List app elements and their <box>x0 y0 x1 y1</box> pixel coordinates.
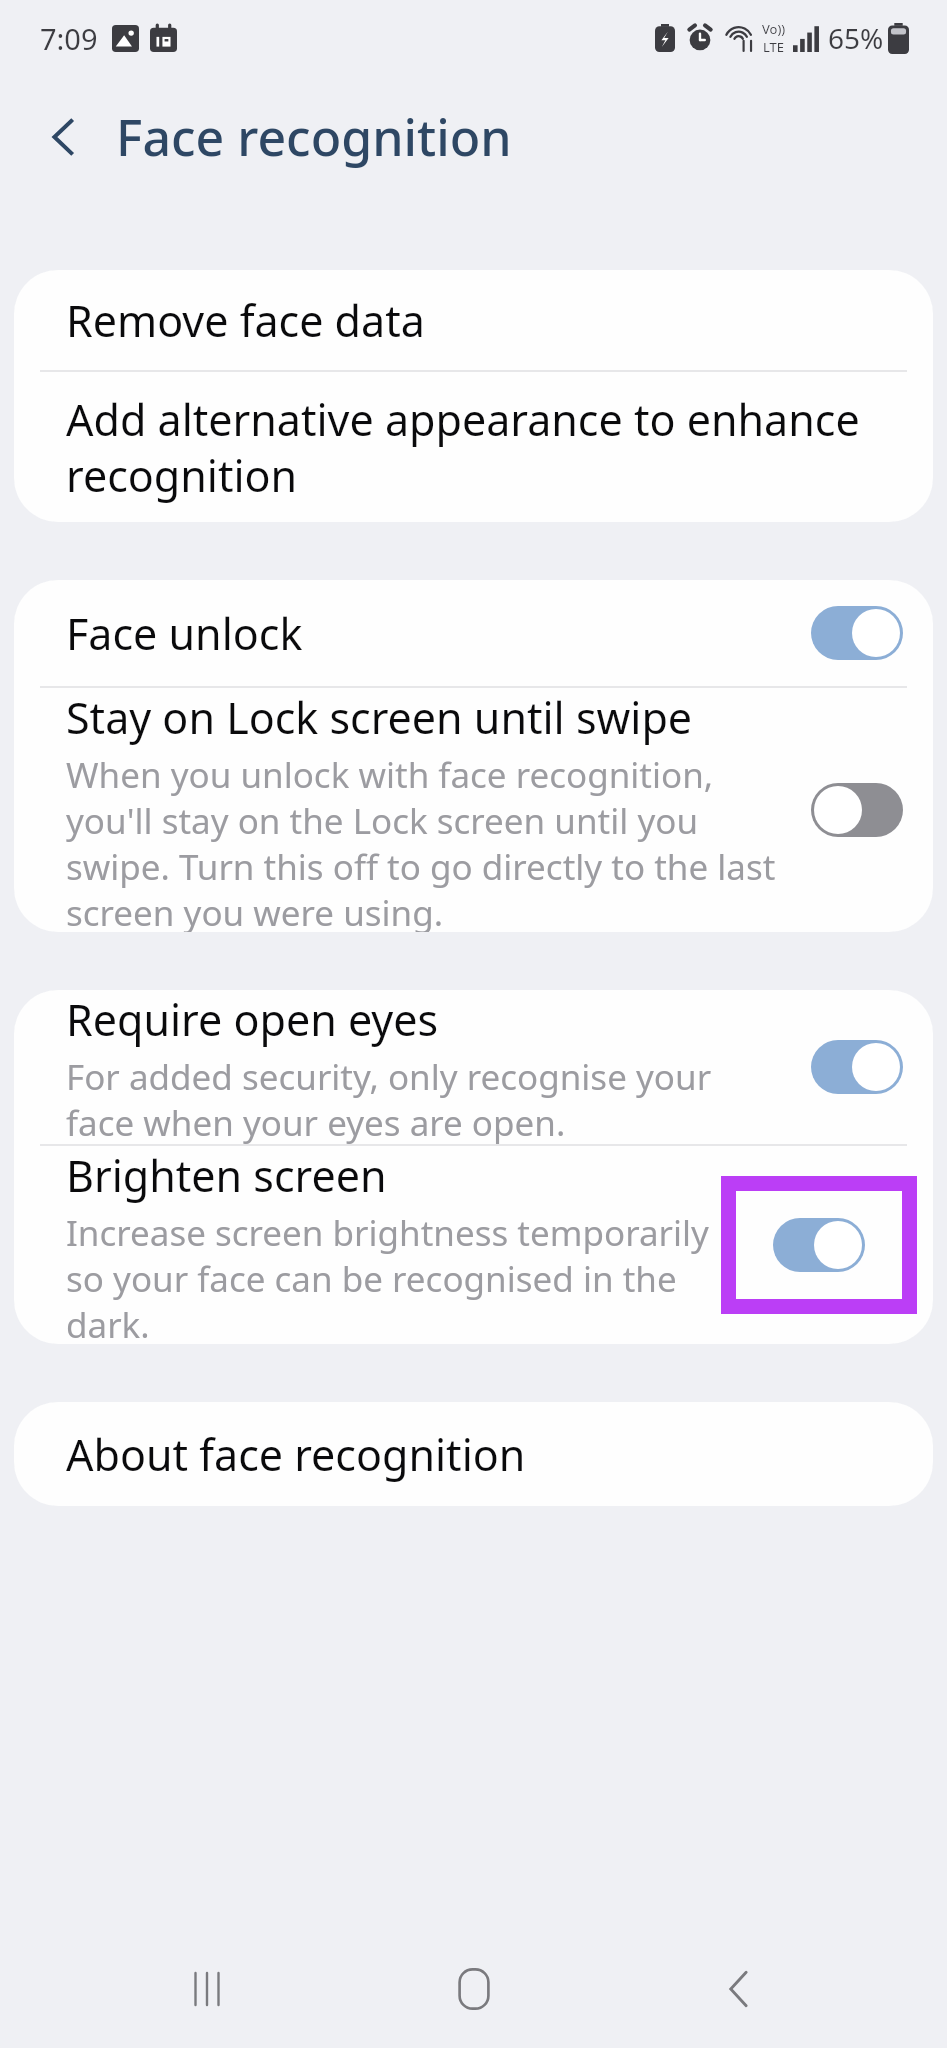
button[interactable]: Face unlock <box>14 580 933 686</box>
button[interactable]: Require open eyes <box>14 990 933 1144</box>
staticText: When you unlock with face recognition, y… <box>66 751 787 932</box>
button[interactable]: About face recognition <box>14 1402 933 1506</box>
staticText: 65% <box>828 19 884 57</box>
staticText: LTE <box>763 38 785 56</box>
staticText: 7:09 <box>40 19 98 58</box>
staticText: Face unlock <box>66 604 303 663</box>
button[interactable]: On <box>773 1218 865 1272</box>
staticText: Brighten screen <box>66 1146 387 1205</box>
button[interactable]: Home <box>414 1930 534 2048</box>
button[interactable]: On <box>811 606 903 660</box>
staticText: Vo)) <box>762 20 786 38</box>
staticText: Face recognition <box>116 103 512 171</box>
staticText: For added security, only recognise your … <box>66 1053 787 1144</box>
button[interactable]: Off <box>811 783 903 837</box>
staticText: Add alternative appearance to enhance re… <box>66 390 881 505</box>
staticText: Increase screen brightness temporarily s… <box>66 1209 711 1344</box>
staticText: Stay on Lock screen until swipe <box>66 688 693 747</box>
staticText: Require open eyes <box>66 990 439 1049</box>
button[interactable]: Brighten screen <box>14 1146 933 1344</box>
button[interactable]: Stay on Lock screen until swipe <box>14 688 933 932</box>
button[interactable]: Back <box>26 99 102 175</box>
button[interactable]: Recent apps <box>147 1930 267 2048</box>
button[interactable]: Remove face data <box>14 270 933 370</box>
button[interactable]: On <box>811 1040 903 1094</box>
button[interactable]: Add alternative appearance to enhance re… <box>14 372 933 522</box>
staticText: About face recognition <box>66 1425 526 1484</box>
button[interactable]: Back <box>680 1930 800 2048</box>
staticText: Remove face data <box>66 291 425 350</box>
